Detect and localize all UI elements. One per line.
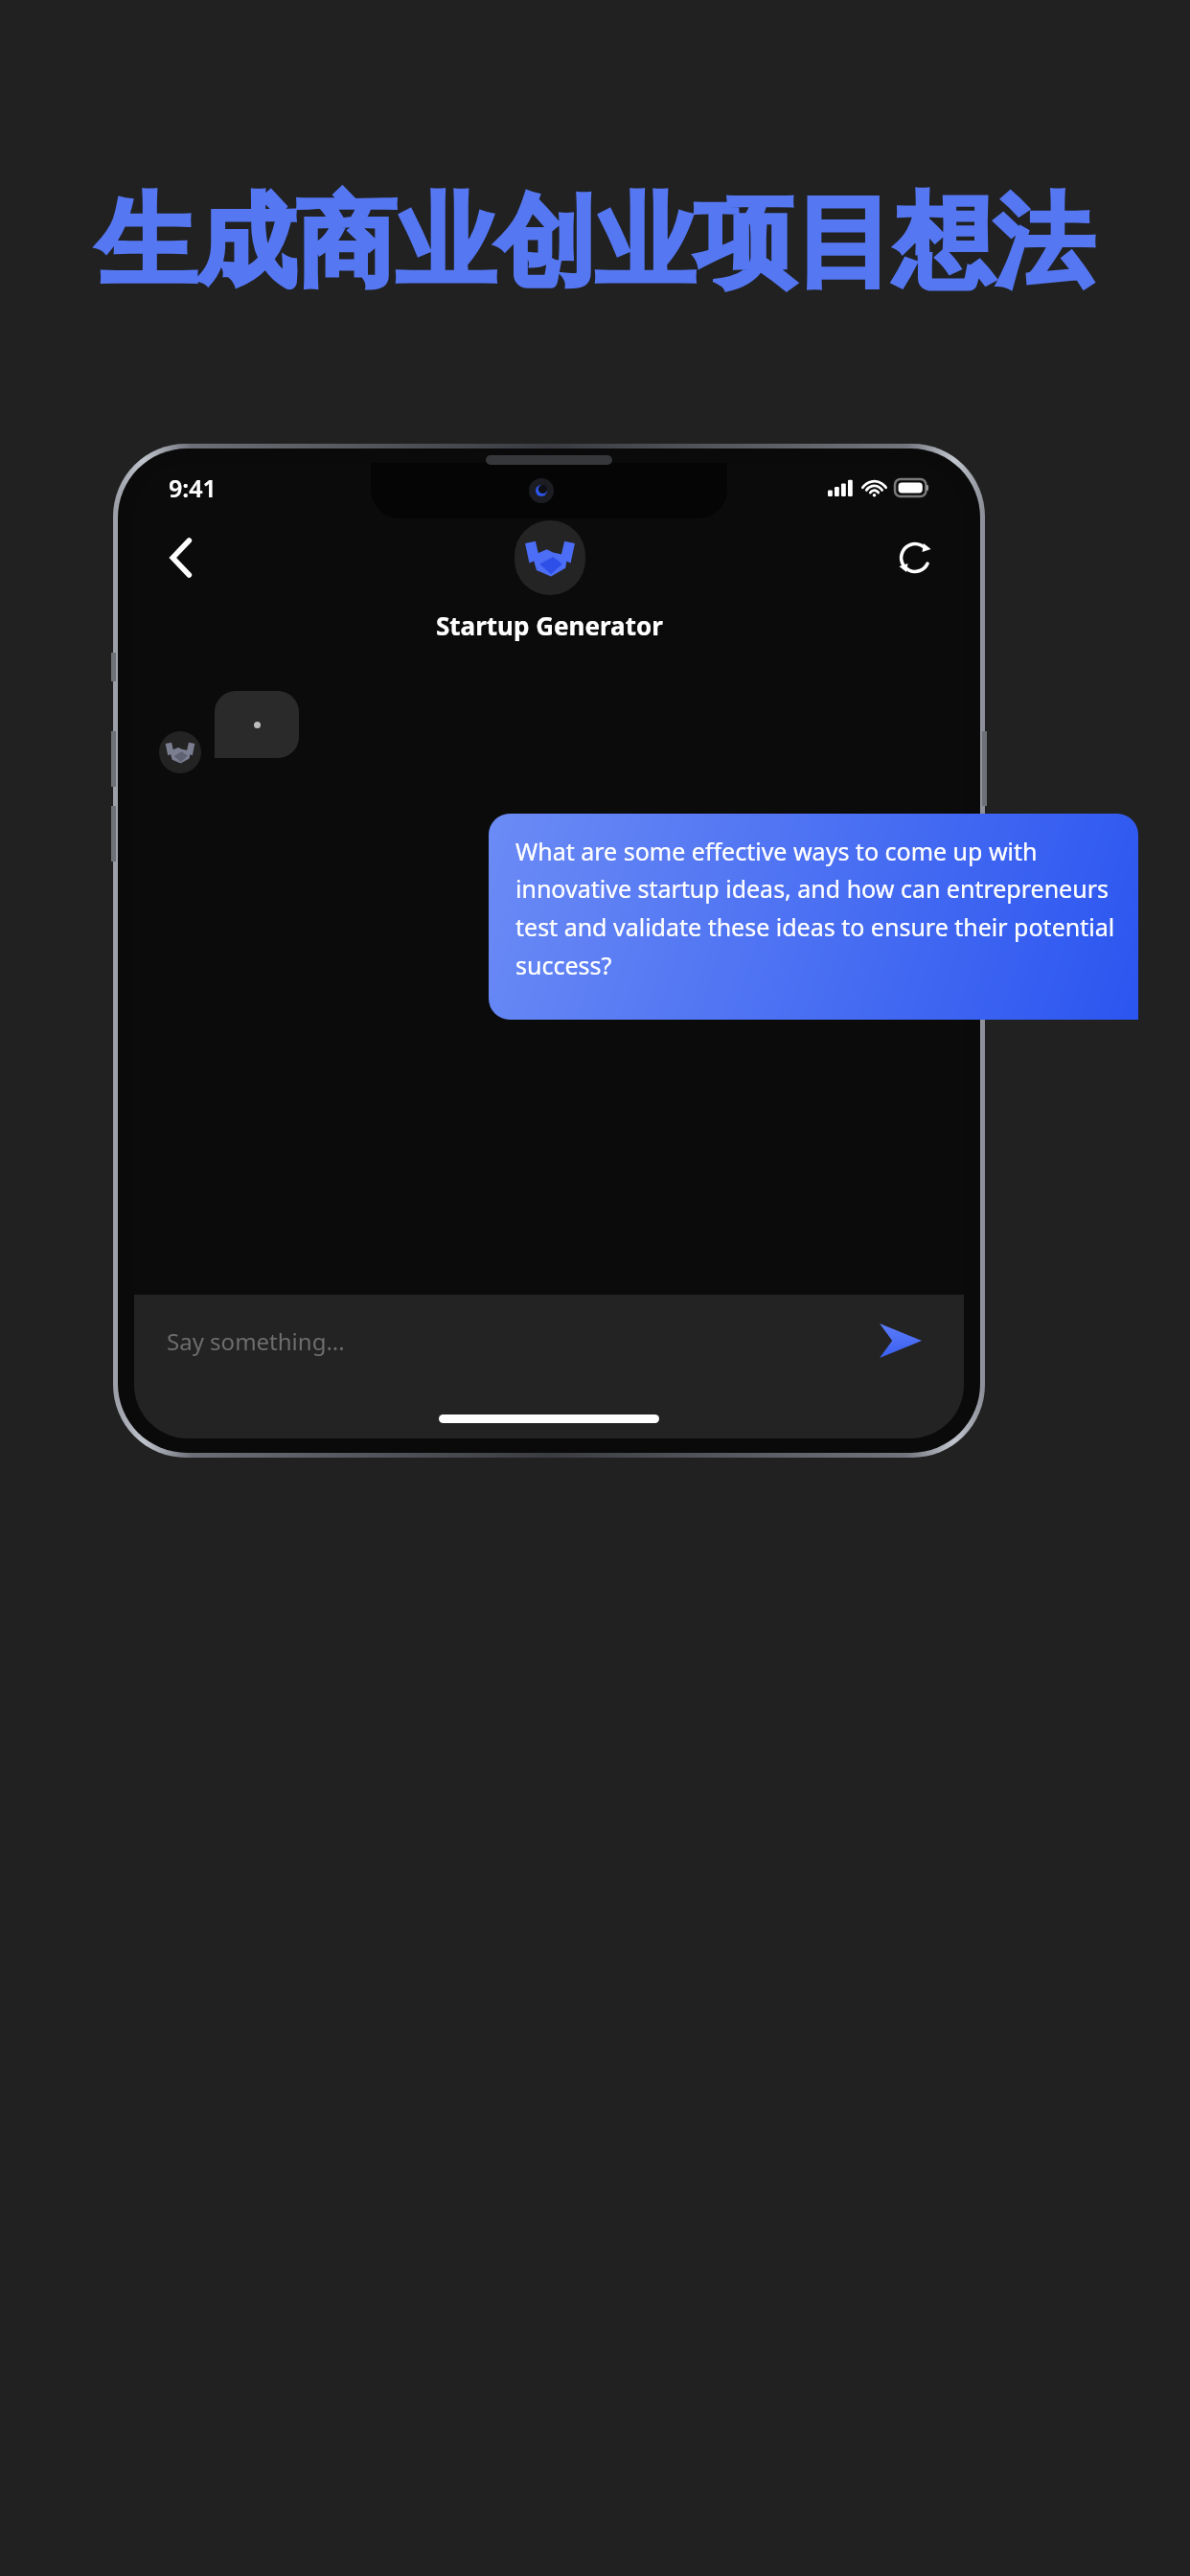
staticText: What are some effective ways to come up … xyxy=(515,835,1115,982)
staticText: 生成商业创业项目想法 xyxy=(97,180,1093,306)
button[interactable]: Refresh xyxy=(885,528,945,587)
staticText: Say something... xyxy=(167,1325,345,1357)
staticText: Startup Generator xyxy=(436,609,663,642)
button[interactable]: Send xyxy=(870,1310,931,1371)
button[interactable]: Say something... xyxy=(167,1325,870,1357)
button[interactable]: What are some effective ways to come up … xyxy=(489,814,1138,1020)
button[interactable] xyxy=(515,520,585,595)
staticText: 9:41 xyxy=(169,471,217,504)
button[interactable]: Back xyxy=(151,528,211,587)
